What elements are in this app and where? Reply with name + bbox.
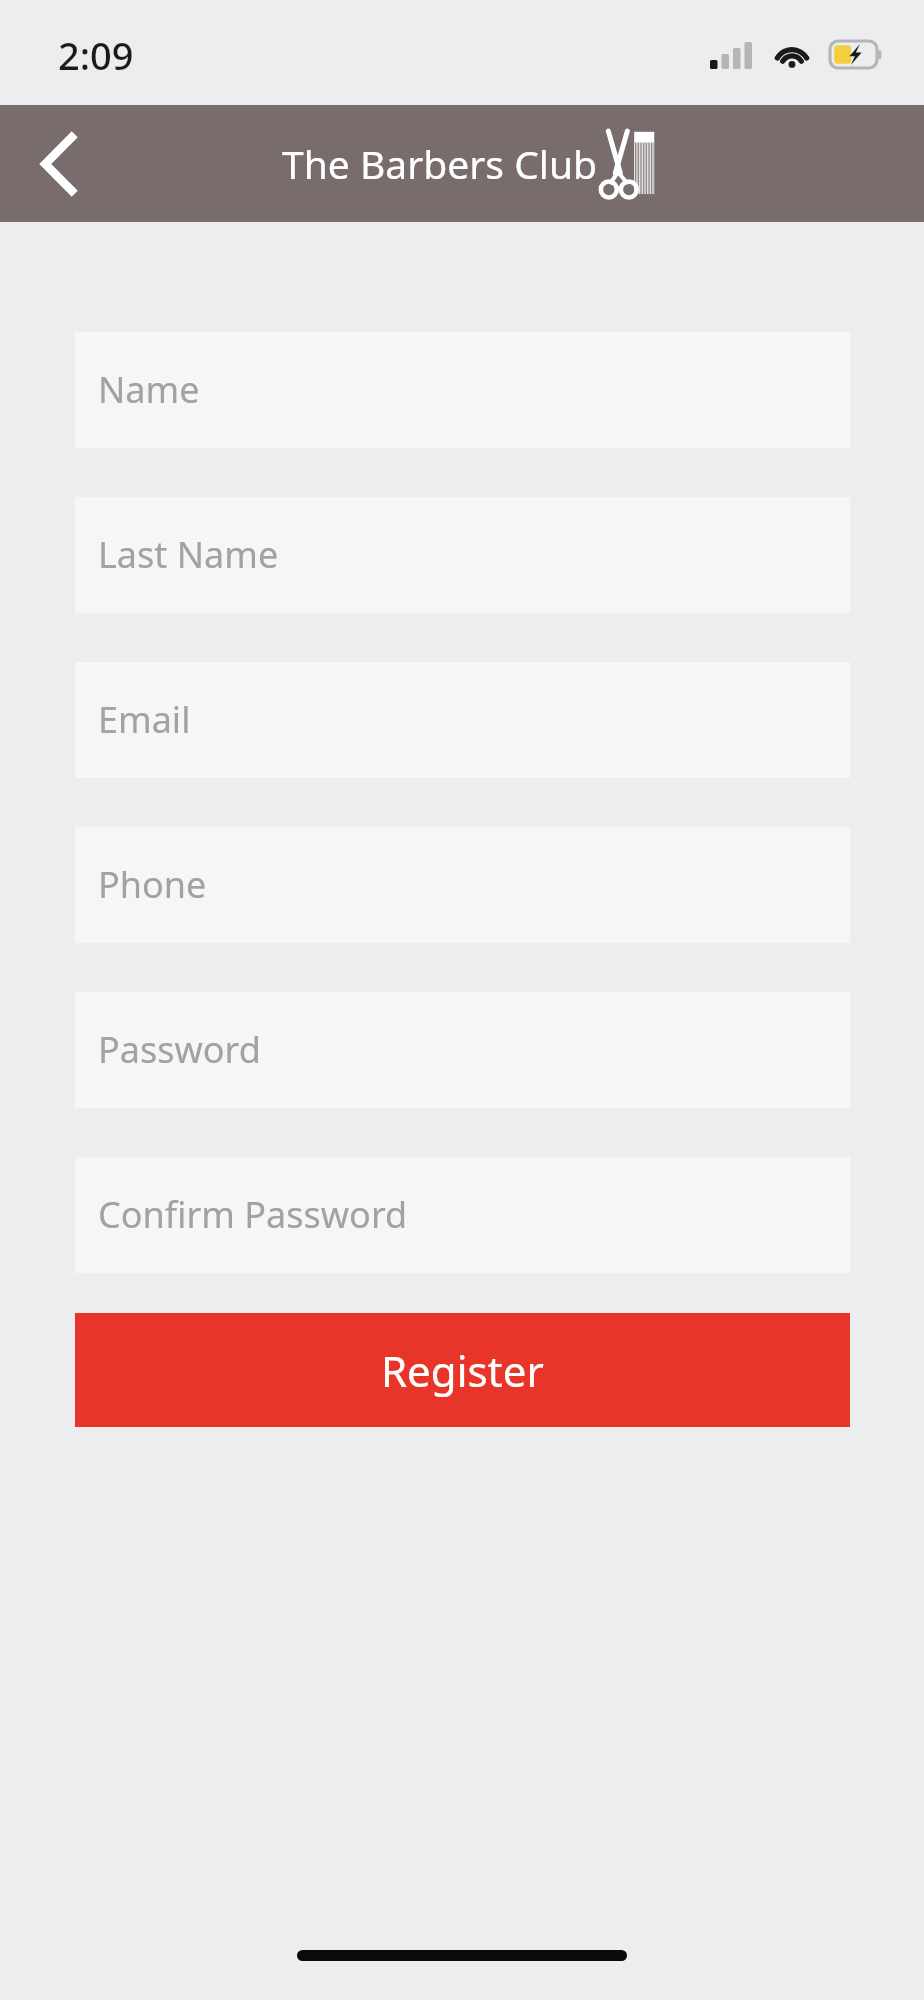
staticText: Confirm Password: [98, 1190, 408, 1239]
staticText: Phone: [98, 860, 207, 909]
staticText: Register: [381, 1342, 544, 1399]
button[interactable]: Register: [75, 1313, 850, 1427]
staticText: Name: [98, 365, 200, 414]
staticText: Password: [98, 1025, 261, 1074]
button[interactable]: Email: [75, 662, 850, 778]
button[interactable]: Last Name: [75, 497, 850, 613]
staticText: 2:09: [58, 29, 134, 81]
button[interactable]: Back: [0, 105, 116, 222]
staticText: The Barbers Club: [282, 137, 597, 190]
button[interactable]: Name: [75, 332, 850, 448]
button[interactable]: Phone: [75, 827, 850, 943]
button[interactable]: Password: [75, 992, 850, 1108]
staticText: Last Name: [98, 530, 279, 579]
staticText: Email: [98, 695, 191, 744]
button[interactable]: Confirm Password: [75, 1157, 850, 1273]
